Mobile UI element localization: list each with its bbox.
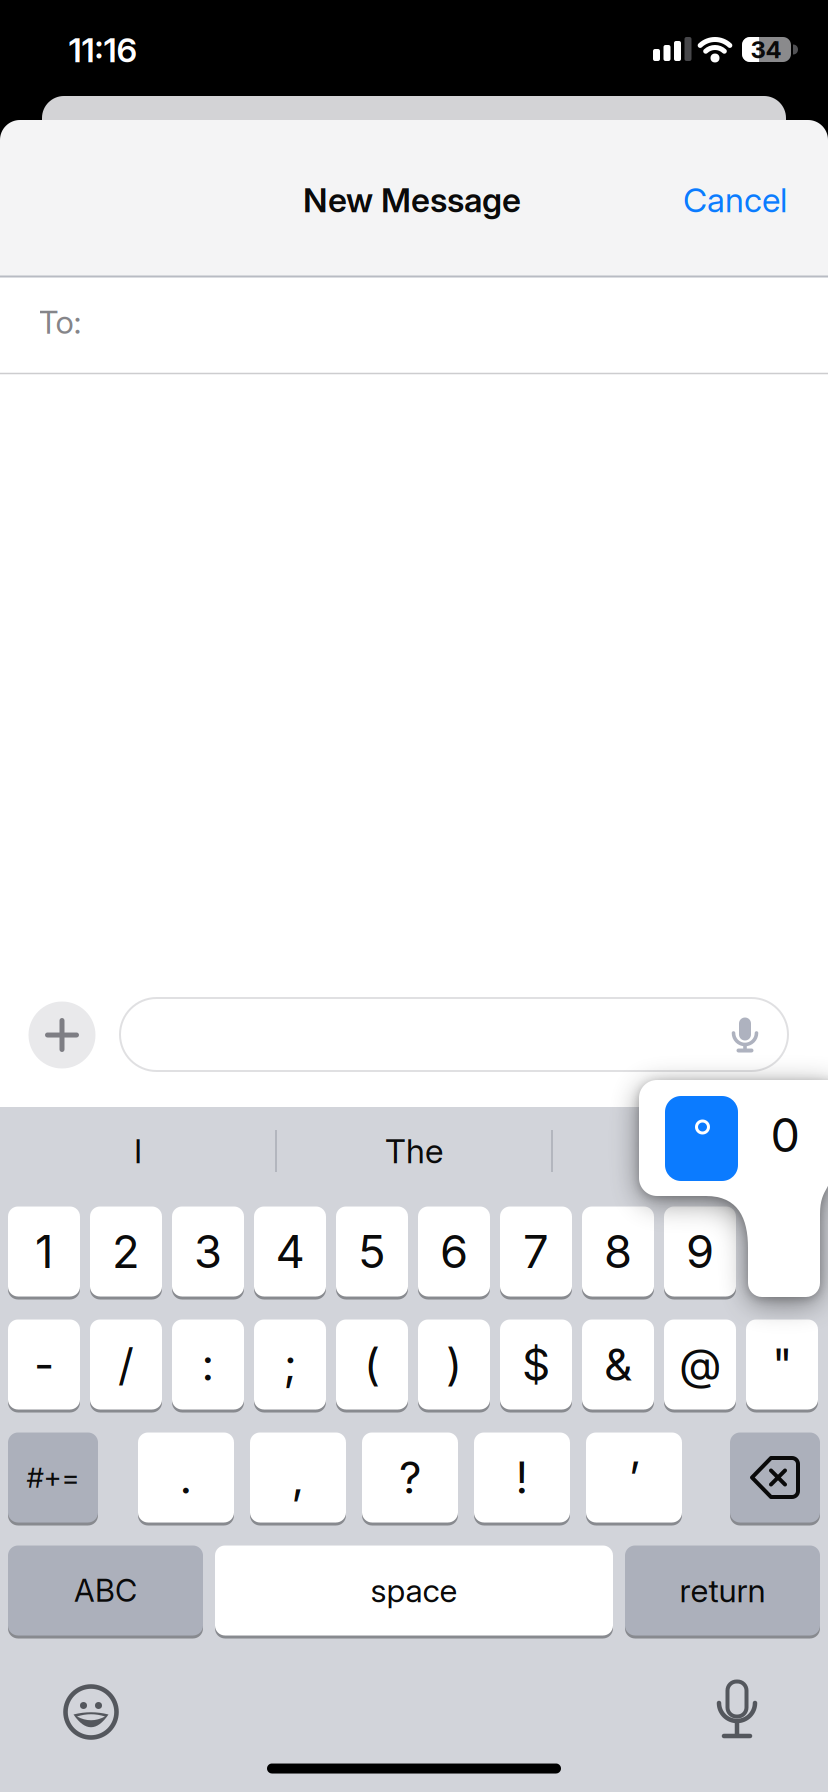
- button[interactable]: 5: [336, 1205, 408, 1298]
- button[interactable]: &: [582, 1318, 654, 1411]
- staticText: 6: [440, 1225, 468, 1278]
- button[interactable]: ’: [586, 1431, 682, 1524]
- button[interactable]: 8: [582, 1205, 654, 1298]
- staticText: ;: [283, 1338, 296, 1390]
- staticText: Cancel: [683, 180, 787, 220]
- staticText: space: [370, 1572, 457, 1609]
- staticText: ?: [399, 1451, 421, 1503]
- staticText: ’: [628, 1451, 639, 1503]
- button[interactable]: Delete: [730, 1431, 820, 1524]
- button[interactable]: $: [500, 1318, 572, 1411]
- button[interactable]: ,: [250, 1431, 346, 1524]
- staticText: @: [679, 1338, 721, 1390]
- button[interactable]: ABC: [8, 1544, 203, 1637]
- staticText: .: [179, 1451, 192, 1503]
- button[interactable]: 7: [500, 1205, 572, 1298]
- staticText: 11:16: [68, 30, 137, 70]
- staticText: $: [522, 1338, 550, 1390]
- staticText: -: [34, 1338, 54, 1390]
- button[interactable]: (: [336, 1318, 408, 1411]
- button[interactable]: space: [215, 1544, 613, 1637]
- staticText: #+=: [26, 1461, 79, 1494]
- staticText: !: [515, 1451, 528, 1503]
- staticText: 7: [523, 1225, 549, 1278]
- button[interactable]: @: [664, 1318, 736, 1411]
- staticText: 0: [770, 1107, 799, 1163]
- staticText: 2: [112, 1225, 140, 1278]
- button[interactable]: Dictation: [701, 1674, 773, 1746]
- button[interactable]: ;: [254, 1318, 326, 1411]
- staticText: /: [118, 1338, 134, 1390]
- button[interactable]: ": [746, 1318, 818, 1411]
- button[interactable]: 6: [418, 1205, 490, 1298]
- staticText: I: [134, 1131, 142, 1171]
- staticText: 34: [750, 35, 781, 64]
- button[interactable]: ): [418, 1318, 490, 1411]
- staticText: (: [364, 1338, 380, 1390]
- staticText: 3: [194, 1225, 222, 1278]
- staticText: &: [604, 1338, 632, 1390]
- button[interactable]: .: [138, 1431, 234, 1524]
- staticText: To:: [38, 303, 81, 341]
- button[interactable]: Add attachment: [28, 1001, 95, 1068]
- button[interactable]: !: [474, 1431, 570, 1524]
- button[interactable]: 9: [664, 1205, 736, 1298]
- staticText: New Message: [303, 180, 521, 220]
- staticText: ": [772, 1338, 792, 1390]
- button[interactable]: Cancel: [683, 180, 787, 220]
- button[interactable]: :: [172, 1318, 244, 1411]
- button[interactable]: 2: [90, 1205, 162, 1298]
- button[interactable]: 4: [254, 1205, 326, 1298]
- button[interactable]: I: [3, 1107, 273, 1195]
- staticText: The: [385, 1131, 443, 1171]
- staticText: ABC: [74, 1572, 137, 1609]
- staticText: 4: [275, 1225, 304, 1278]
- staticText: ,: [291, 1451, 304, 1503]
- staticText: return: [679, 1572, 765, 1609]
- button[interactable]: /: [90, 1318, 162, 1411]
- button[interactable]: -: [8, 1318, 80, 1411]
- button[interactable]: ?: [362, 1431, 458, 1524]
- staticText: :: [201, 1338, 214, 1390]
- button[interactable]: The: [279, 1107, 549, 1195]
- staticText: 5: [358, 1225, 386, 1278]
- button[interactable]: 1: [8, 1205, 80, 1298]
- button[interactable]: Emoji: [59, 1680, 123, 1744]
- staticText: 1: [35, 1225, 53, 1278]
- button[interactable]: return: [625, 1544, 820, 1637]
- staticText: 9: [686, 1225, 714, 1278]
- button[interactable]: 3: [172, 1205, 244, 1298]
- staticText: ): [446, 1338, 462, 1390]
- button[interactable]: #+=: [8, 1431, 98, 1524]
- staticText: 8: [604, 1225, 632, 1278]
- button[interactable]: Dictate: [717, 1007, 773, 1063]
